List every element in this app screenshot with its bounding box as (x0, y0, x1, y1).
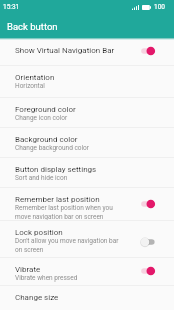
staticText: Lock position (15, 228, 63, 237)
staticText: Orientation (15, 73, 55, 82)
staticText: Change size (15, 293, 59, 302)
staticText: Remember last position (15, 195, 100, 204)
staticText: Foreground color (15, 105, 76, 114)
staticText: Back button (7, 21, 58, 32)
staticText: Sort and hide icon (15, 174, 68, 182)
staticText: Change background color (15, 144, 90, 152)
button[interactable]: Enabled (139, 199, 158, 209)
button[interactable]: Button display settings (0, 157, 174, 187)
button[interactable]: Disabled (139, 237, 158, 247)
button[interactable]: Change size (0, 285, 174, 309)
staticText: Remember last position when you move nav… (15, 204, 124, 220)
button[interactable]: Orientation (0, 65, 174, 97)
button[interactable]: Show Virtual Navigation Bar (0, 38, 174, 65)
staticText: 100 (154, 3, 165, 11)
staticText: Background color (15, 135, 78, 144)
button[interactable]: Foreground color (0, 97, 174, 127)
button[interactable]: Enabled (139, 46, 158, 56)
staticText: Vibrate (15, 265, 41, 274)
button[interactable]: Back button (0, 14, 174, 38)
staticText: Horizontal (15, 82, 45, 90)
staticText: Don't allow you move navigation bar on s… (15, 237, 124, 253)
button[interactable]: Remember last position (0, 187, 174, 220)
staticText: 15:31 (3, 3, 20, 11)
button[interactable]: Enabled (139, 266, 158, 276)
staticText: Button display settings (15, 165, 97, 174)
staticText: Change icon color (15, 114, 68, 122)
staticText: Show Virtual Navigation Bar (15, 46, 115, 55)
button[interactable]: Lock position (0, 220, 174, 257)
button[interactable]: Background color (0, 127, 174, 157)
staticText: Vibrate when pressed (15, 274, 78, 282)
button[interactable]: Vibrate (0, 257, 174, 285)
